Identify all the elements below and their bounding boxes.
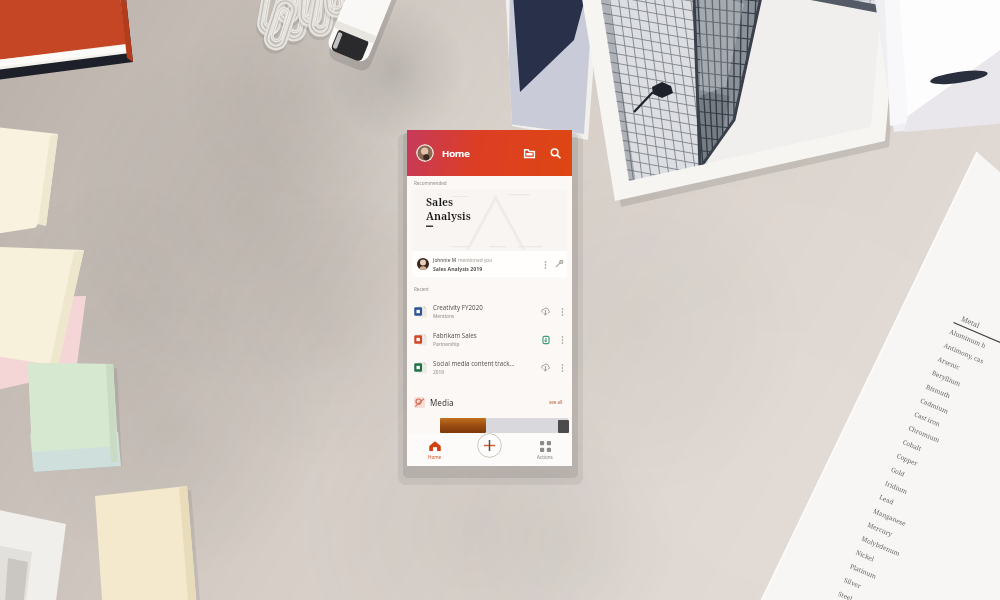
staticText: Cobalt bbox=[901, 437, 923, 453]
staticText: Analysis bbox=[426, 209, 471, 223]
button[interactable]: Search bbox=[547, 145, 563, 161]
staticText: Sales Analysis 2019 bbox=[433, 265, 483, 272]
button[interactable]: Create new bbox=[477, 433, 502, 458]
staticText: Gold bbox=[890, 465, 907, 479]
staticText: mentioned you bbox=[458, 257, 493, 264]
staticText: Copper bbox=[895, 451, 919, 468]
button[interactable]: Media bbox=[407, 381, 572, 415]
button[interactable]: Home bbox=[407, 434, 462, 466]
staticText: Creativity FY2020 bbox=[433, 303, 483, 311]
staticText: Cast iron bbox=[913, 410, 942, 429]
staticText: Silver bbox=[843, 575, 863, 591]
staticText: Home bbox=[442, 147, 470, 160]
staticText: Johnnie M bbox=[433, 257, 458, 264]
staticText: Cadmium bbox=[919, 396, 950, 416]
staticText: Mentions bbox=[433, 313, 455, 320]
staticText: Antimony, cas bbox=[942, 340, 985, 366]
staticText: Nickel bbox=[854, 548, 876, 564]
staticText: Chromium bbox=[907, 423, 941, 445]
button[interactable]: More options bbox=[558, 363, 567, 372]
staticText: Manganese bbox=[872, 506, 908, 528]
button[interactable]: My files bbox=[521, 145, 537, 161]
staticText: Iridium bbox=[884, 479, 909, 496]
staticText: see all bbox=[549, 399, 563, 405]
button[interactable]: More options bbox=[558, 307, 567, 316]
staticText: Partnership bbox=[433, 341, 460, 348]
button[interactable]: see all bbox=[547, 397, 565, 407]
staticText: Arsenic bbox=[936, 354, 962, 372]
button[interactable]: More options bbox=[558, 335, 567, 344]
button[interactable]: Photo bbox=[440, 418, 486, 433]
staticText: Aluminum h bbox=[948, 327, 988, 350]
button[interactable]: Sales bbox=[412, 189, 567, 277]
staticText: Lead bbox=[878, 492, 895, 506]
staticText: Social media content track... bbox=[433, 359, 515, 367]
staticText: Media bbox=[430, 397, 454, 408]
staticText: Mercury bbox=[866, 520, 895, 539]
button[interactable]: Fabrikam Sales bbox=[407, 325, 572, 353]
button[interactable]: Photo thumbnail bbox=[558, 420, 569, 433]
button[interactable]: Actions bbox=[517, 434, 572, 466]
staticText: Recent bbox=[414, 286, 429, 292]
button[interactable]: Account bbox=[416, 144, 434, 162]
staticText: Molybdenum bbox=[860, 534, 902, 558]
staticText: Home bbox=[428, 454, 442, 460]
staticText: 2019 bbox=[433, 369, 444, 376]
button[interactable]: More options bbox=[541, 260, 550, 269]
staticText: Actions bbox=[537, 454, 553, 460]
button[interactable]: Creativity FY2020 bbox=[407, 297, 572, 325]
staticText: Platinum bbox=[849, 561, 878, 581]
staticText: Metal bbox=[960, 314, 981, 331]
button[interactable]: Photo bbox=[486, 418, 568, 433]
staticText: Sales bbox=[426, 195, 454, 209]
button[interactable]: Pin bbox=[554, 259, 564, 269]
staticText: Bismuth bbox=[925, 382, 952, 400]
staticText: Recommended bbox=[414, 180, 447, 186]
staticText: Beryllium bbox=[931, 368, 963, 389]
staticText: Fabrikam Sales bbox=[433, 331, 477, 339]
staticText: Steel bbox=[837, 589, 854, 600]
button[interactable]: Social media content track... bbox=[407, 353, 572, 381]
